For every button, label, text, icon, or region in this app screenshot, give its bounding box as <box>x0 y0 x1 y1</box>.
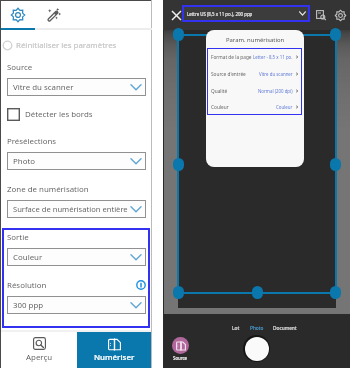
staticText: Couleur <box>13 252 43 263</box>
staticText: Param. numérisation <box>226 36 285 44</box>
button[interactable]: Réinitialiser les paramètres <box>2 39 117 52</box>
button[interactable]: Crop handle <box>173 158 184 171</box>
button[interactable]: Vitre du scanner <box>7 78 146 96</box>
button[interactable]: Close <box>165 4 187 26</box>
staticText: Vitre du scanner <box>259 71 293 77</box>
staticText: Source <box>173 355 188 361</box>
button[interactable]: Settings <box>329 4 350 26</box>
staticText: Couleur <box>276 104 293 110</box>
staticText: Format de la page <box>211 54 252 60</box>
staticText: Détecter les bords <box>25 109 93 120</box>
button[interactable]: Couleur <box>7 248 146 266</box>
button[interactable]: Détecter les bords <box>7 107 93 121</box>
staticText: Numériser <box>94 352 135 363</box>
button[interactable]: Crop handle <box>173 28 184 41</box>
staticText: Lettre US (8,5 x 11 po.), 200 ppp <box>187 11 253 17</box>
button[interactable]: Surface de numérisation entière <box>7 200 146 218</box>
button[interactable]: Photo <box>250 325 264 332</box>
button[interactable]: Source <box>172 337 189 361</box>
button[interactable]: Scan settings tab <box>5 2 31 28</box>
button[interactable]: Qualité <box>211 82 299 99</box>
button[interactable]: Couleur <box>211 99 299 115</box>
staticText: Aperçu <box>26 352 53 363</box>
button[interactable]: Crop handle <box>252 286 263 299</box>
button[interactable]: Aperçu <box>1 332 77 368</box>
button[interactable]: Numériser <box>77 332 151 368</box>
staticText: Surface de numérisation entière <box>13 204 128 214</box>
staticText: Résolution <box>7 280 47 291</box>
button[interactable]: Crop handle <box>173 286 184 299</box>
staticText: Sortie <box>7 232 29 243</box>
staticText: Présélections <box>7 136 57 147</box>
staticText: Vitre du scanner <box>13 82 74 93</box>
staticText: Source d'entrée <box>211 71 246 77</box>
staticText: Photo <box>13 156 36 167</box>
staticText: Réinitialiser les paramètres <box>16 40 117 51</box>
button[interactable]: Enhancements tab <box>40 2 66 28</box>
button[interactable]: Lettre US (8,5 x 11 po.), 200 ppp <box>182 5 310 22</box>
button[interactable]: Source d'entrée <box>211 65 299 82</box>
staticText: Source <box>7 62 33 73</box>
staticText: Qualité <box>211 88 228 94</box>
button[interactable]: Document <box>273 325 297 332</box>
button[interactable]: Scan preview <box>310 4 332 26</box>
button[interactable]: Crop handle <box>330 28 341 41</box>
staticText: Couleur <box>211 104 229 110</box>
staticText: Zone de numérisation <box>7 184 89 195</box>
button[interactable]: Crop handle <box>330 286 341 299</box>
button[interactable]: Resolution info <box>134 278 148 292</box>
button[interactable]: Lot <box>232 325 240 332</box>
staticText: 300 ppp <box>13 300 44 311</box>
staticText: Letter - 8,5 x 11 po. <box>253 54 293 60</box>
button[interactable]: Crop handle <box>330 158 341 171</box>
button[interactable]: Photo <box>7 152 146 170</box>
staticText: Normal (200 dpi) <box>258 88 293 94</box>
button[interactable]: 300 ppp <box>7 296 146 314</box>
button[interactable]: Capture <box>243 335 270 362</box>
button[interactable]: Format de la page <box>211 48 299 65</box>
